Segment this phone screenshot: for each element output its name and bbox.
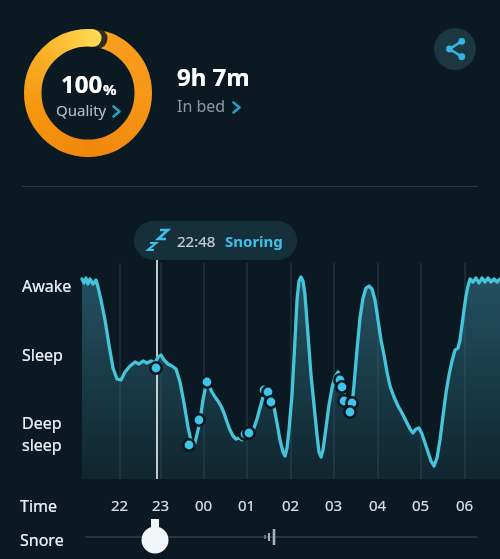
staticText: Sleep	[22, 344, 63, 366]
staticText: Time	[20, 495, 58, 517]
staticText: Snoring	[225, 231, 283, 251]
button[interactable]	[139, 517, 171, 557]
button[interactable]: In bed	[177, 95, 241, 117]
button[interactable]: 22:48	[134, 221, 297, 260]
staticText: Awake	[22, 275, 72, 297]
staticText: Quality	[56, 100, 107, 120]
staticText: Snore	[20, 529, 64, 551]
staticText: %	[103, 79, 117, 99]
button[interactable]: 100	[24, 29, 152, 157]
staticText: 100	[61, 67, 103, 100]
staticText: 03	[325, 495, 343, 515]
staticText: 23	[152, 495, 170, 515]
staticText: 06	[456, 495, 474, 515]
staticText: 00	[195, 495, 213, 515]
staticText: 01	[238, 495, 256, 515]
button[interactable]	[434, 28, 476, 70]
staticText: 22:48	[177, 231, 216, 251]
staticText: sleep	[22, 434, 62, 456]
staticText: 02	[282, 495, 300, 515]
staticText: 05	[412, 495, 430, 515]
staticText: 04	[369, 495, 387, 515]
staticText: 22	[111, 495, 129, 515]
staticText: 9h 7m	[177, 60, 250, 93]
staticText: In bed	[177, 95, 226, 117]
staticText: Deep	[22, 412, 62, 434]
